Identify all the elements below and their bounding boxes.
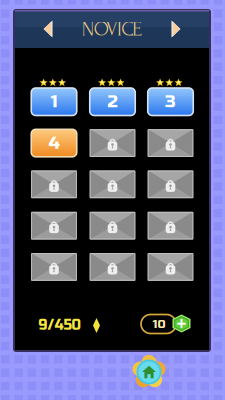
staticText: NOVICE [82, 18, 142, 41]
staticText: 3 [165, 91, 176, 112]
button[interactable] [90, 129, 135, 157]
button[interactable]: Previous world [33, 10, 63, 48]
staticText: + [176, 311, 186, 334]
button[interactable] [148, 253, 193, 281]
button[interactable]: Next world [161, 10, 191, 48]
button[interactable]: Home [132, 355, 166, 389]
button[interactable]: 2 [90, 88, 135, 115]
button[interactable]: 3 [148, 88, 193, 115]
button[interactable]: 1 [31, 88, 77, 115]
button[interactable] [31, 171, 77, 198]
button[interactable]: Add coins [141, 314, 191, 334]
staticText: 10 [152, 317, 165, 331]
staticText: 2 [107, 91, 117, 112]
button[interactable] [90, 253, 135, 281]
button[interactable] [148, 129, 193, 157]
staticText: 4 [48, 133, 59, 153]
button[interactable] [148, 171, 193, 198]
button[interactable]: 4 [31, 129, 77, 157]
staticText: 9/450 [38, 317, 80, 334]
button[interactable] [90, 171, 135, 198]
button[interactable] [31, 212, 77, 239]
button[interactable] [90, 212, 135, 239]
button[interactable] [31, 253, 77, 281]
button[interactable] [148, 212, 193, 239]
staticText: 1 [50, 91, 57, 112]
